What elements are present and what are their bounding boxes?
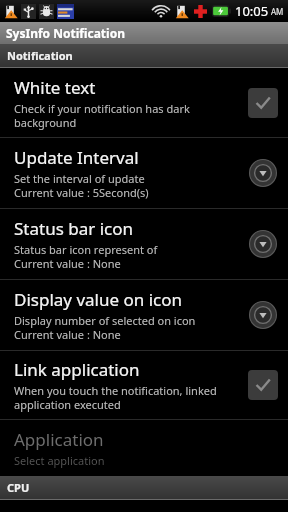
- staticText: CPU: [7, 480, 30, 495]
- staticText: Set the interval of update Current value…: [14, 171, 149, 200]
- staticText: Notification: [7, 48, 73, 63]
- staticText: Application: [14, 428, 104, 451]
- button[interactable]: Toggle checkbox: [248, 88, 278, 118]
- staticText: SysInfo Notification: [6, 25, 125, 41]
- staticText: Update Interval: [14, 146, 139, 169]
- button[interactable]: Link application: [0, 351, 288, 419]
- staticText: Select application: [14, 453, 105, 468]
- button[interactable]: Open list: [248, 229, 278, 259]
- staticText: Status bar icon represent of Current val…: [14, 242, 158, 271]
- button[interactable]: Update Interval: [0, 138, 288, 208]
- button[interactable]: White text: [0, 68, 288, 137]
- staticText: White text: [14, 76, 96, 99]
- staticText: AM: [271, 6, 284, 17]
- staticText: 10:05: [235, 2, 269, 20]
- button[interactable]: Toggle checkbox: [248, 370, 278, 400]
- button[interactable]: Open list: [248, 300, 278, 330]
- button[interactable]: Open list: [248, 158, 278, 188]
- button[interactable]: Display value on icon: [0, 280, 288, 350]
- staticText: Display number of selected on icon Curre…: [14, 313, 196, 342]
- button[interactable]: Status bar icon: [0, 209, 288, 279]
- button[interactable]: Application: [0, 420, 288, 476]
- staticText: Display value on icon: [14, 288, 183, 311]
- staticText: Link application: [14, 358, 140, 381]
- staticText: Check if your notification has dark back…: [14, 101, 190, 130]
- staticText: When you touch the notification, linked …: [14, 383, 217, 412]
- staticText: Status bar icon: [14, 217, 133, 240]
